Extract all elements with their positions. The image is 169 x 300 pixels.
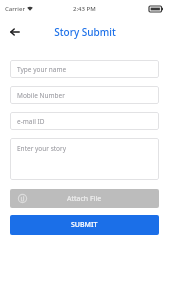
button[interactable]: SUBMIT — [10, 215, 159, 235]
staticText: Enter your story — [17, 144, 67, 153]
staticText: 2:43 PM — [73, 5, 96, 13]
staticText: Attach File — [67, 194, 102, 204]
button[interactable]: Attach File — [10, 189, 159, 208]
button[interactable]: Enter your story — [10, 138, 159, 180]
staticText: SUBMIT — [71, 220, 98, 230]
button[interactable]: Back — [6, 23, 24, 41]
button[interactable]: Mobile Number — [10, 86, 159, 104]
button[interactable]: e-mail ID — [10, 112, 159, 130]
staticText: Story Submit — [54, 25, 116, 39]
button[interactable]: Type your name — [10, 60, 159, 78]
staticText: Carrier — [5, 5, 25, 13]
staticText: e-mail ID — [17, 117, 45, 126]
staticText: Mobile Number — [17, 91, 65, 100]
staticText: Type your name — [17, 65, 67, 74]
